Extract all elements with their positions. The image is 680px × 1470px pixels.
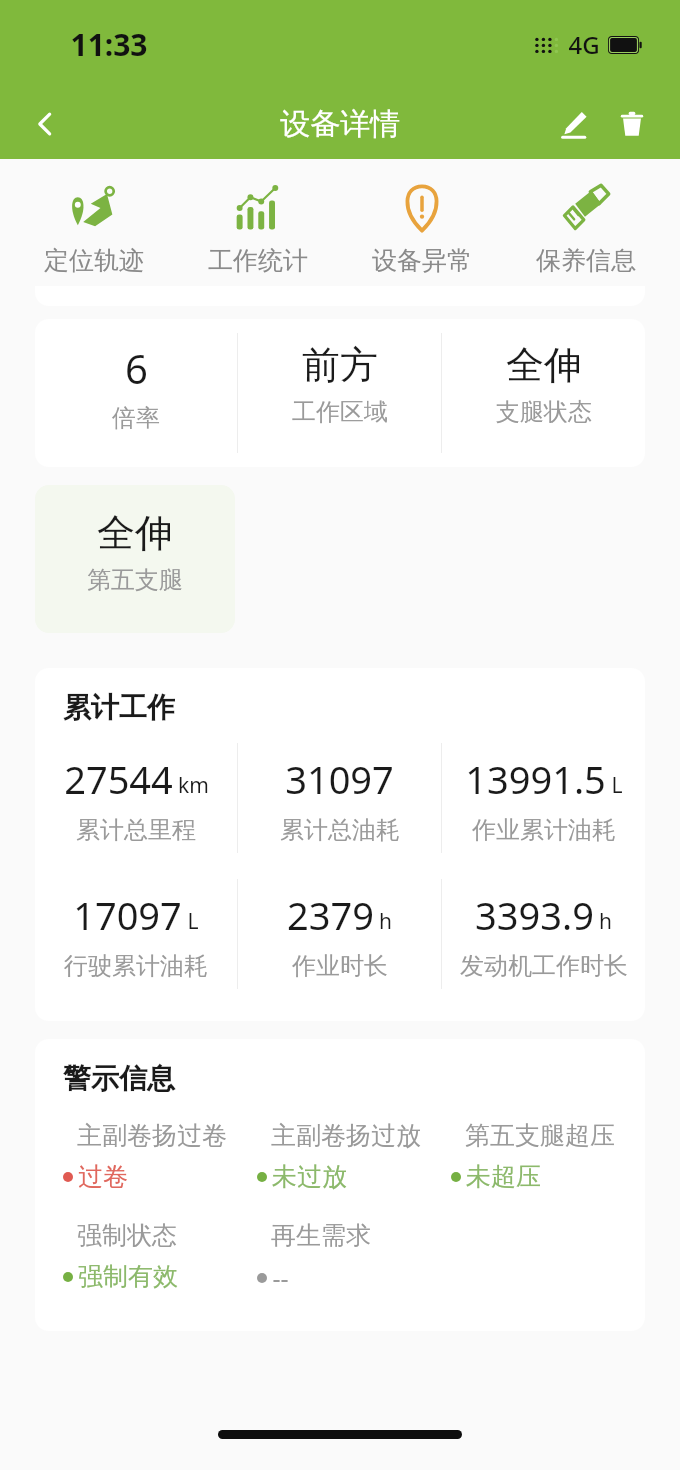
staticText: 主副卷扬过放 bbox=[271, 1120, 421, 1151]
staticText: 工作区域 bbox=[292, 397, 388, 427]
button[interactable]: 6 bbox=[35, 319, 645, 467]
button[interactable]: Delete bbox=[606, 98, 658, 150]
button[interactable]: 累计工作 bbox=[35, 668, 645, 1021]
staticText: 4G bbox=[568, 28, 600, 61]
staticText: 11:33 bbox=[70, 24, 148, 65]
staticText: 警示信息 bbox=[63, 1061, 175, 1096]
staticText: h bbox=[599, 907, 612, 936]
staticText: 再生需求 bbox=[271, 1220, 371, 1251]
staticText: 过卷 bbox=[78, 1161, 128, 1192]
staticText: 支腿状态 bbox=[496, 397, 592, 427]
button[interactable]: 全伸 bbox=[35, 485, 235, 633]
staticText: 强制有效 bbox=[78, 1261, 178, 1292]
staticText: 发动机工作时长 bbox=[460, 951, 628, 981]
button[interactable]: Edit bbox=[548, 98, 600, 150]
staticText: 行驶累计油耗 bbox=[64, 951, 208, 981]
staticText: 累计总里程 bbox=[76, 815, 196, 845]
staticText: 设备详情 bbox=[280, 105, 400, 143]
button[interactable]: 警示信息 bbox=[35, 1039, 645, 1331]
staticText: h bbox=[379, 907, 392, 936]
button[interactable]: 定位轨迹 bbox=[24, 177, 164, 280]
staticText: 主副卷扬过卷 bbox=[77, 1120, 227, 1151]
staticText: 前方 bbox=[302, 341, 378, 389]
staticText: 27544 bbox=[64, 753, 173, 805]
staticText: 工作统计 bbox=[208, 245, 308, 276]
staticText: L bbox=[611, 771, 623, 800]
staticText: L bbox=[187, 907, 199, 936]
staticText: 全伸 bbox=[97, 509, 173, 557]
staticText: 作业时长 bbox=[292, 951, 388, 981]
staticText: 17097 bbox=[73, 889, 182, 941]
staticText: 未超压 bbox=[466, 1161, 541, 1192]
staticText: 13991.5 bbox=[465, 753, 606, 805]
staticText: 设备异常 bbox=[372, 245, 472, 276]
staticText: 累计工作 bbox=[63, 690, 175, 725]
staticText: -- bbox=[272, 1261, 289, 1295]
staticText: 第五支腿 bbox=[87, 565, 183, 595]
staticText: 6 bbox=[125, 341, 148, 395]
staticText: 未过放 bbox=[272, 1161, 347, 1192]
staticText: 第五支腿超压 bbox=[465, 1120, 615, 1151]
staticText: 全伸 bbox=[506, 341, 582, 389]
staticText: 强制状态 bbox=[77, 1220, 177, 1251]
staticText: 保养信息 bbox=[536, 245, 636, 276]
staticText: km bbox=[178, 771, 209, 800]
button[interactable]: 工作统计 bbox=[188, 177, 328, 280]
staticText: 累计总油耗 bbox=[280, 815, 400, 845]
staticText: 定位轨迹 bbox=[44, 245, 144, 276]
staticText: 3393.9 bbox=[475, 889, 594, 941]
button[interactable]: 保养信息 bbox=[516, 177, 656, 280]
staticText: 31097 bbox=[285, 753, 394, 805]
staticText: 2379 bbox=[287, 889, 374, 941]
button[interactable]: 设备异常 bbox=[352, 177, 492, 280]
staticText: 作业累计油耗 bbox=[472, 815, 616, 845]
button[interactable]: Back bbox=[18, 97, 72, 151]
staticText: 倍率 bbox=[112, 403, 160, 433]
